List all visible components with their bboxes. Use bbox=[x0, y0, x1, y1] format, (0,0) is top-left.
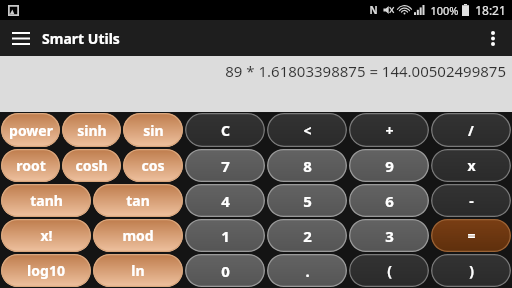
staticText: cosh bbox=[75, 156, 108, 175]
button[interactable]: . bbox=[267, 254, 347, 287]
staticText: x bbox=[467, 156, 476, 175]
staticText: 2 bbox=[303, 226, 312, 246]
button[interactable]: 6 bbox=[349, 184, 429, 217]
staticText: - bbox=[469, 191, 474, 210]
button[interactable]: ) bbox=[431, 254, 511, 287]
button[interactable]: / bbox=[431, 113, 511, 147]
button[interactable]: + bbox=[349, 113, 429, 147]
staticText: x! bbox=[40, 226, 53, 245]
staticText: ln bbox=[131, 261, 145, 280]
staticText: 6 bbox=[385, 191, 394, 211]
button[interactable]: ( bbox=[349, 254, 429, 287]
staticText: 5 bbox=[303, 191, 312, 211]
staticText: 4 bbox=[221, 191, 230, 211]
button[interactable]: C bbox=[185, 113, 265, 147]
button[interactable]: power bbox=[1, 113, 60, 147]
button[interactable]: tan bbox=[93, 184, 183, 217]
staticText: sinh bbox=[77, 121, 107, 140]
button[interactable]: 4 bbox=[185, 184, 265, 217]
staticText: . bbox=[305, 261, 310, 281]
button[interactable]: tanh bbox=[1, 184, 91, 217]
staticText: Smart Utils bbox=[42, 29, 120, 48]
staticText: sin bbox=[143, 121, 164, 140]
staticText: < bbox=[303, 121, 312, 140]
button[interactable]: 8 bbox=[267, 149, 347, 182]
staticText: 18:21 bbox=[475, 2, 506, 18]
button[interactable]: 5 bbox=[267, 184, 347, 217]
staticText: + bbox=[385, 121, 394, 140]
button[interactable]: 0 bbox=[185, 254, 265, 287]
staticText: 0 bbox=[221, 261, 230, 281]
button[interactable]: root bbox=[1, 149, 60, 182]
button[interactable]: sin bbox=[123, 113, 183, 147]
button[interactable]: x! bbox=[1, 219, 91, 252]
button[interactable]: cosh bbox=[62, 149, 121, 182]
button[interactable]: sinh bbox=[62, 113, 121, 147]
button[interactable]: - bbox=[431, 184, 511, 217]
staticText: mod bbox=[122, 226, 154, 245]
staticText: ) bbox=[469, 261, 474, 280]
button[interactable]: 3 bbox=[349, 219, 429, 252]
button[interactable]: 7 bbox=[185, 149, 265, 182]
staticText: / bbox=[468, 121, 474, 140]
staticText: 3 bbox=[385, 226, 394, 246]
button[interactable]: cos bbox=[123, 149, 183, 182]
staticText: 100% bbox=[430, 3, 459, 18]
button[interactable]: 1 bbox=[185, 219, 265, 252]
button[interactable]: < bbox=[267, 113, 347, 147]
staticText: 89 * 1.61803398875 = 144.00502499875 bbox=[225, 61, 506, 81]
staticText: 1 bbox=[221, 226, 230, 246]
staticText: tan bbox=[126, 191, 150, 210]
staticText: log10 bbox=[27, 261, 65, 280]
staticText: N bbox=[369, 3, 378, 17]
button[interactable]: Open navigation drawer bbox=[6, 23, 36, 53]
staticText: C bbox=[221, 121, 230, 140]
button[interactable]: x bbox=[431, 149, 511, 182]
button[interactable]: = bbox=[431, 219, 511, 252]
staticText: root bbox=[16, 156, 46, 175]
staticText: cos bbox=[141, 156, 165, 175]
staticText: power bbox=[9, 121, 53, 140]
staticText: tanh bbox=[30, 191, 63, 210]
staticText: 9 bbox=[385, 156, 394, 176]
button[interactable]: 2 bbox=[267, 219, 347, 252]
staticText: = bbox=[467, 226, 476, 245]
staticText: ( bbox=[387, 261, 392, 280]
button[interactable]: 9 bbox=[349, 149, 429, 182]
button[interactable]: log10 bbox=[1, 254, 91, 287]
staticText: 7 bbox=[221, 156, 230, 176]
button[interactable]: mod bbox=[93, 219, 183, 252]
button[interactable]: ln bbox=[93, 254, 183, 287]
button[interactable]: More options bbox=[478, 23, 508, 53]
staticText: 8 bbox=[303, 156, 312, 176]
